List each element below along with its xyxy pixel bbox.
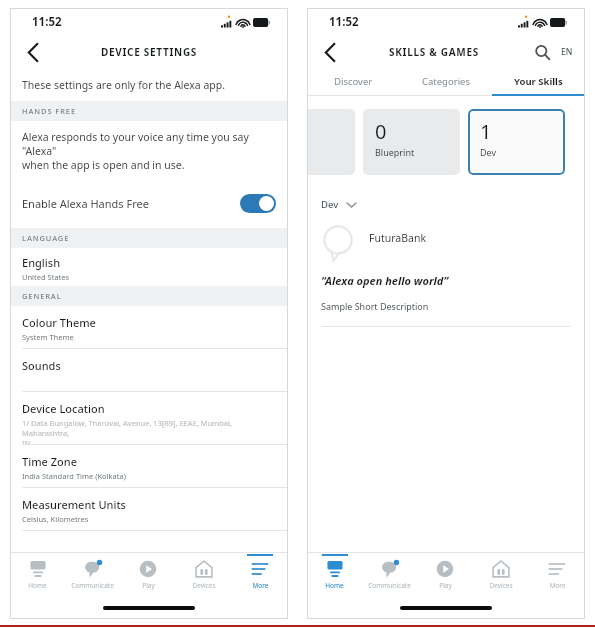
button[interactable]: Measurement Units — [10, 488, 288, 531]
button[interactable]: Devices — [176, 553, 232, 597]
staticText: Celsius, Kilometres — [22, 514, 89, 524]
staticText: Dev — [321, 198, 339, 211]
staticText: India Standard Time (Kolkata) — [22, 471, 126, 481]
staticText: Sounds — [22, 358, 61, 373]
staticText: FuturaBank — [369, 231, 427, 245]
button[interactable]: English — [10, 248, 288, 286]
staticText: System Theme — [22, 332, 74, 342]
button[interactable]: 1 — [468, 109, 565, 175]
button[interactable]: Back — [313, 36, 347, 68]
button[interactable]: Categories — [399, 68, 492, 94]
staticText: Your Skills — [514, 75, 563, 88]
staticText: Communicate — [71, 581, 114, 590]
button[interactable]: Enable Alexa Hands Free — [10, 188, 288, 218]
staticText: Sample Short Description — [321, 300, 429, 312]
button[interactable]: Communicate — [362, 553, 417, 597]
staticText: Devices — [489, 581, 513, 590]
staticText: 1/ Data Bungalow, Tharuvai, Avenue, 13[8… — [22, 418, 276, 444]
button[interactable]: 0 — [363, 109, 460, 175]
staticText: HANDS FREE — [22, 106, 76, 116]
button[interactable]: Devices — [473, 553, 529, 597]
staticText: GENERAL — [22, 291, 62, 301]
staticText: 0 — [375, 118, 387, 145]
button[interactable]: Dev — [321, 198, 356, 211]
staticText: “Alexa open hello world” — [321, 273, 449, 288]
staticText: Enable Alexa Hands Free — [22, 196, 240, 211]
staticText: Communicate — [368, 581, 411, 590]
staticText: These settings are only for the Alexa ap… — [22, 78, 226, 92]
button[interactable]: Play — [120, 553, 176, 597]
staticText: Devices — [192, 581, 216, 590]
staticText: 11:52 — [329, 14, 359, 30]
button[interactable]: Your Skills — [492, 68, 585, 94]
staticText: United States — [22, 272, 70, 282]
staticText: Time Zone — [22, 454, 77, 469]
button[interactable]: Device Location — [10, 392, 288, 445]
staticText: LANGUAGE — [22, 233, 70, 243]
staticText: Alexa responds to your voice any time yo… — [22, 130, 276, 172]
staticText: English — [22, 255, 61, 270]
staticText: Colour Theme — [22, 315, 96, 330]
button[interactable]: Play — [417, 553, 473, 597]
staticText: Dev — [480, 146, 497, 158]
button[interactable]: Discover — [307, 68, 399, 94]
staticText: Play — [142, 581, 155, 590]
staticText: 1 — [480, 118, 492, 145]
button[interactable]: Home — [10, 553, 65, 597]
staticText: EN — [561, 46, 573, 58]
button[interactable]: More — [529, 553, 585, 597]
staticText: More — [252, 581, 269, 590]
button[interactable]: Time Zone — [10, 445, 288, 488]
button[interactable]: Colour Theme — [10, 306, 288, 349]
staticText: More — [549, 581, 566, 590]
button[interactable]: Communicate — [65, 553, 120, 597]
staticText: Blueprint — [375, 146, 415, 158]
button[interactable]: Home — [307, 553, 362, 597]
button[interactable]: Back — [16, 36, 50, 68]
staticText: Home — [28, 581, 47, 590]
button[interactable]: More — [232, 553, 288, 597]
staticText: Play — [439, 581, 452, 590]
button[interactable]: EN — [559, 46, 575, 58]
staticText: Device Location — [22, 401, 105, 416]
button[interactable]: Search — [529, 39, 555, 65]
staticText: Discover — [334, 75, 373, 88]
staticText: Measurement Units — [22, 497, 126, 512]
button[interactable]: Sounds — [10, 349, 288, 392]
staticText: Categories — [422, 75, 470, 88]
staticText: Home — [325, 581, 344, 590]
staticText: 11:52 — [32, 14, 62, 30]
staticText: SKILLS & GAMES — [389, 45, 479, 59]
staticText: DEVICE SETTINGS — [101, 45, 198, 59]
